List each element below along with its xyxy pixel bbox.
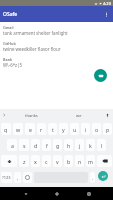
- staticText: k: [89, 142, 92, 149]
- staticText: l: [101, 142, 103, 149]
- staticText: g: [56, 142, 60, 149]
- staticText: Bank: [3, 57, 13, 62]
- staticText: w: [16, 126, 21, 133]
- button[interactable]: Enter: [96, 169, 113, 185]
- button[interactable]: Bank: [0, 54, 113, 70]
- button[interactable]: v: [53, 155, 62, 167]
- staticText: W\-6*z|5: [3, 62, 23, 68]
- staticText: 4:20: [103, 1, 111, 6]
- button[interactable]: GitHub: [0, 38, 113, 54]
- button[interactable]: d: [31, 139, 40, 151]
- button[interactable]: h: [64, 139, 73, 151]
- staticText: thanks: [25, 113, 38, 118]
- button[interactable]: j: [75, 139, 84, 151]
- staticText: .: [92, 175, 94, 181]
- button[interactable]: s: [19, 139, 29, 151]
- button[interactable]: we: [55, 109, 102, 121]
- staticText: o: [95, 126, 99, 133]
- button[interactable]: Voice input: [102, 109, 113, 121]
- staticText: Gmail: [3, 25, 14, 30]
- button[interactable]: y: [59, 123, 68, 135]
- button[interactable]: g: [53, 139, 62, 151]
- staticText: i: [85, 126, 87, 133]
- staticText: v: [56, 158, 59, 165]
- staticText: GitHub: [3, 41, 16, 46]
- staticText: m: [88, 158, 93, 165]
- button[interactable]: thanks: [8, 109, 55, 121]
- button[interactable]: ?123: [1, 172, 12, 183]
- staticText: a: [11, 142, 14, 149]
- button[interactable]: Emoji: [23, 172, 32, 183]
- button[interactable]: Shift: [1, 155, 17, 167]
- staticText: we: [76, 113, 82, 118]
- staticText: b: [67, 158, 71, 165]
- staticText: d: [34, 142, 38, 149]
- staticText: y: [62, 126, 65, 133]
- staticText: twine weedkiller flavor flour: [3, 46, 61, 52]
- staticText: u: [73, 126, 77, 133]
- button[interactable]: i: [81, 123, 90, 135]
- staticText: h: [67, 142, 71, 149]
- button[interactable]: Add entry: [94, 69, 107, 82]
- staticText: c: [45, 158, 48, 165]
- button[interactable]: Home: [50, 187, 63, 200]
- button[interactable]: b: [64, 155, 73, 167]
- button[interactable]: n: [75, 155, 84, 167]
- staticText: ,: [17, 175, 19, 181]
- staticText: j: [79, 142, 81, 149]
- button[interactable]: z: [19, 155, 29, 167]
- button[interactable]: t: [48, 123, 57, 135]
- staticText: OSafe: [3, 11, 18, 18]
- button[interactable]: More options: [100, 8, 112, 20]
- button[interactable]: More suggestions: [0, 109, 8, 121]
- button[interactable]: o: [92, 123, 101, 135]
- staticText: z: [23, 158, 26, 165]
- button[interactable]: p: [103, 123, 112, 135]
- button[interactable]: u: [70, 123, 79, 135]
- staticText: f: [46, 142, 48, 149]
- staticText: ?123: [2, 175, 11, 180]
- button[interactable]: c: [42, 155, 51, 167]
- staticText: tank armament shelter fanlight: [3, 30, 68, 36]
- button[interactable]: Backspace: [97, 155, 112, 167]
- staticText: e: [29, 126, 32, 133]
- staticText: t: [52, 126, 54, 133]
- button[interactable]: Back: [19, 187, 32, 200]
- button[interactable]: x: [31, 155, 40, 167]
- staticText: x: [34, 158, 37, 165]
- staticText: q: [4, 126, 8, 133]
- button[interactable]: q: [1, 123, 11, 135]
- button[interactable]: l: [97, 139, 106, 151]
- staticText: s: [23, 142, 26, 149]
- button[interactable]: .: [90, 172, 95, 183]
- button[interactable]: Recents: [82, 187, 95, 200]
- staticText: n: [78, 158, 82, 165]
- button[interactable]: ,: [14, 172, 21, 183]
- button[interactable]: r: [37, 123, 46, 135]
- button[interactable]: w: [13, 123, 23, 135]
- staticText: r: [40, 126, 43, 133]
- button[interactable]: f: [42, 139, 51, 151]
- button[interactable]: e: [25, 123, 35, 135]
- button[interactable]: Gmail: [0, 22, 113, 38]
- button[interactable]: m: [86, 155, 95, 167]
- button[interactable]: a: [7, 139, 17, 151]
- staticText: p: [106, 126, 110, 133]
- button[interactable]: k: [86, 139, 95, 151]
